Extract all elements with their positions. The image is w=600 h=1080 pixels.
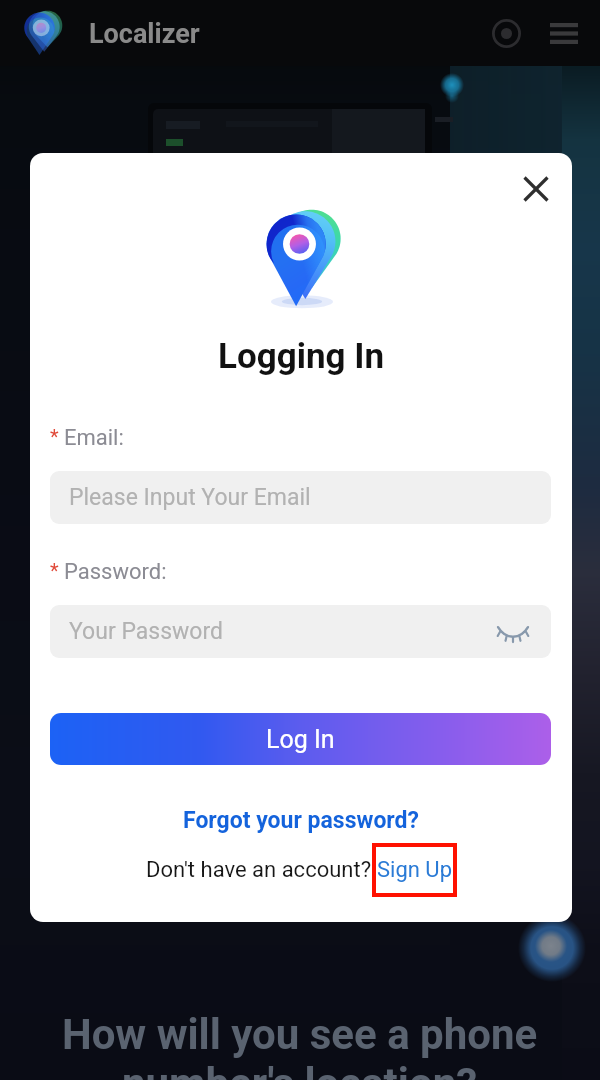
staticText: Localizer (89, 18, 200, 50)
button[interactable]: Please Input Your Email (50, 471, 551, 524)
button[interactable]: Menu (544, 13, 584, 53)
button[interactable]: Forgot your password? (177, 805, 425, 836)
staticText: Email: (64, 425, 124, 451)
staticText: Forgot your password? (183, 807, 419, 834)
staticText: Logging In (218, 336, 385, 377)
button[interactable]: Close (520, 173, 552, 205)
staticText: How will you see a phone (62, 1010, 538, 1059)
staticText: Sign Up (377, 857, 452, 883)
staticText: Log In (266, 725, 335, 754)
button[interactable]: Show password (496, 615, 530, 649)
button[interactable]: Sign Up (377, 857, 452, 883)
staticText: Your Password (69, 618, 223, 645)
button[interactable]: Your Password (50, 605, 551, 658)
staticText: Please Input Your Email (69, 484, 311, 511)
staticText: * (50, 425, 59, 448)
staticText: Don't have an account? (146, 857, 372, 883)
button[interactable]: Log In (50, 713, 551, 765)
button[interactable]: Language (486, 13, 526, 53)
staticText: Password: (64, 559, 167, 585)
staticText: number's location? (122, 1059, 478, 1080)
staticText: * (50, 559, 59, 582)
